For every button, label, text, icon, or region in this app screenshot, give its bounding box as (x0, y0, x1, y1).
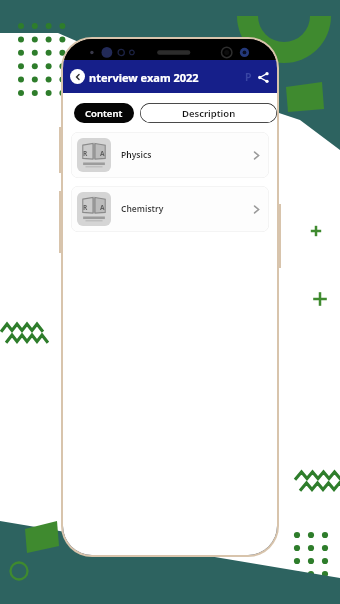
staticText: R (83, 149, 88, 158)
button[interactable]: Content (74, 103, 134, 123)
staticText: Description (182, 107, 236, 120)
button[interactable]: Back (70, 69, 85, 84)
staticText: R (83, 203, 88, 212)
staticText: Content (85, 107, 123, 120)
staticText: Physics (121, 149, 250, 161)
button[interactable]: Description (140, 103, 277, 123)
staticText: Chemistry (121, 203, 250, 215)
staticText: P (245, 70, 252, 84)
staticText: A (100, 149, 105, 158)
staticText: A (100, 203, 105, 212)
button[interactable]: R (71, 132, 269, 178)
button[interactable]: Share (255, 69, 271, 85)
button[interactable]: R (71, 186, 269, 232)
staticText: nterview exam 2022 (89, 70, 199, 85)
